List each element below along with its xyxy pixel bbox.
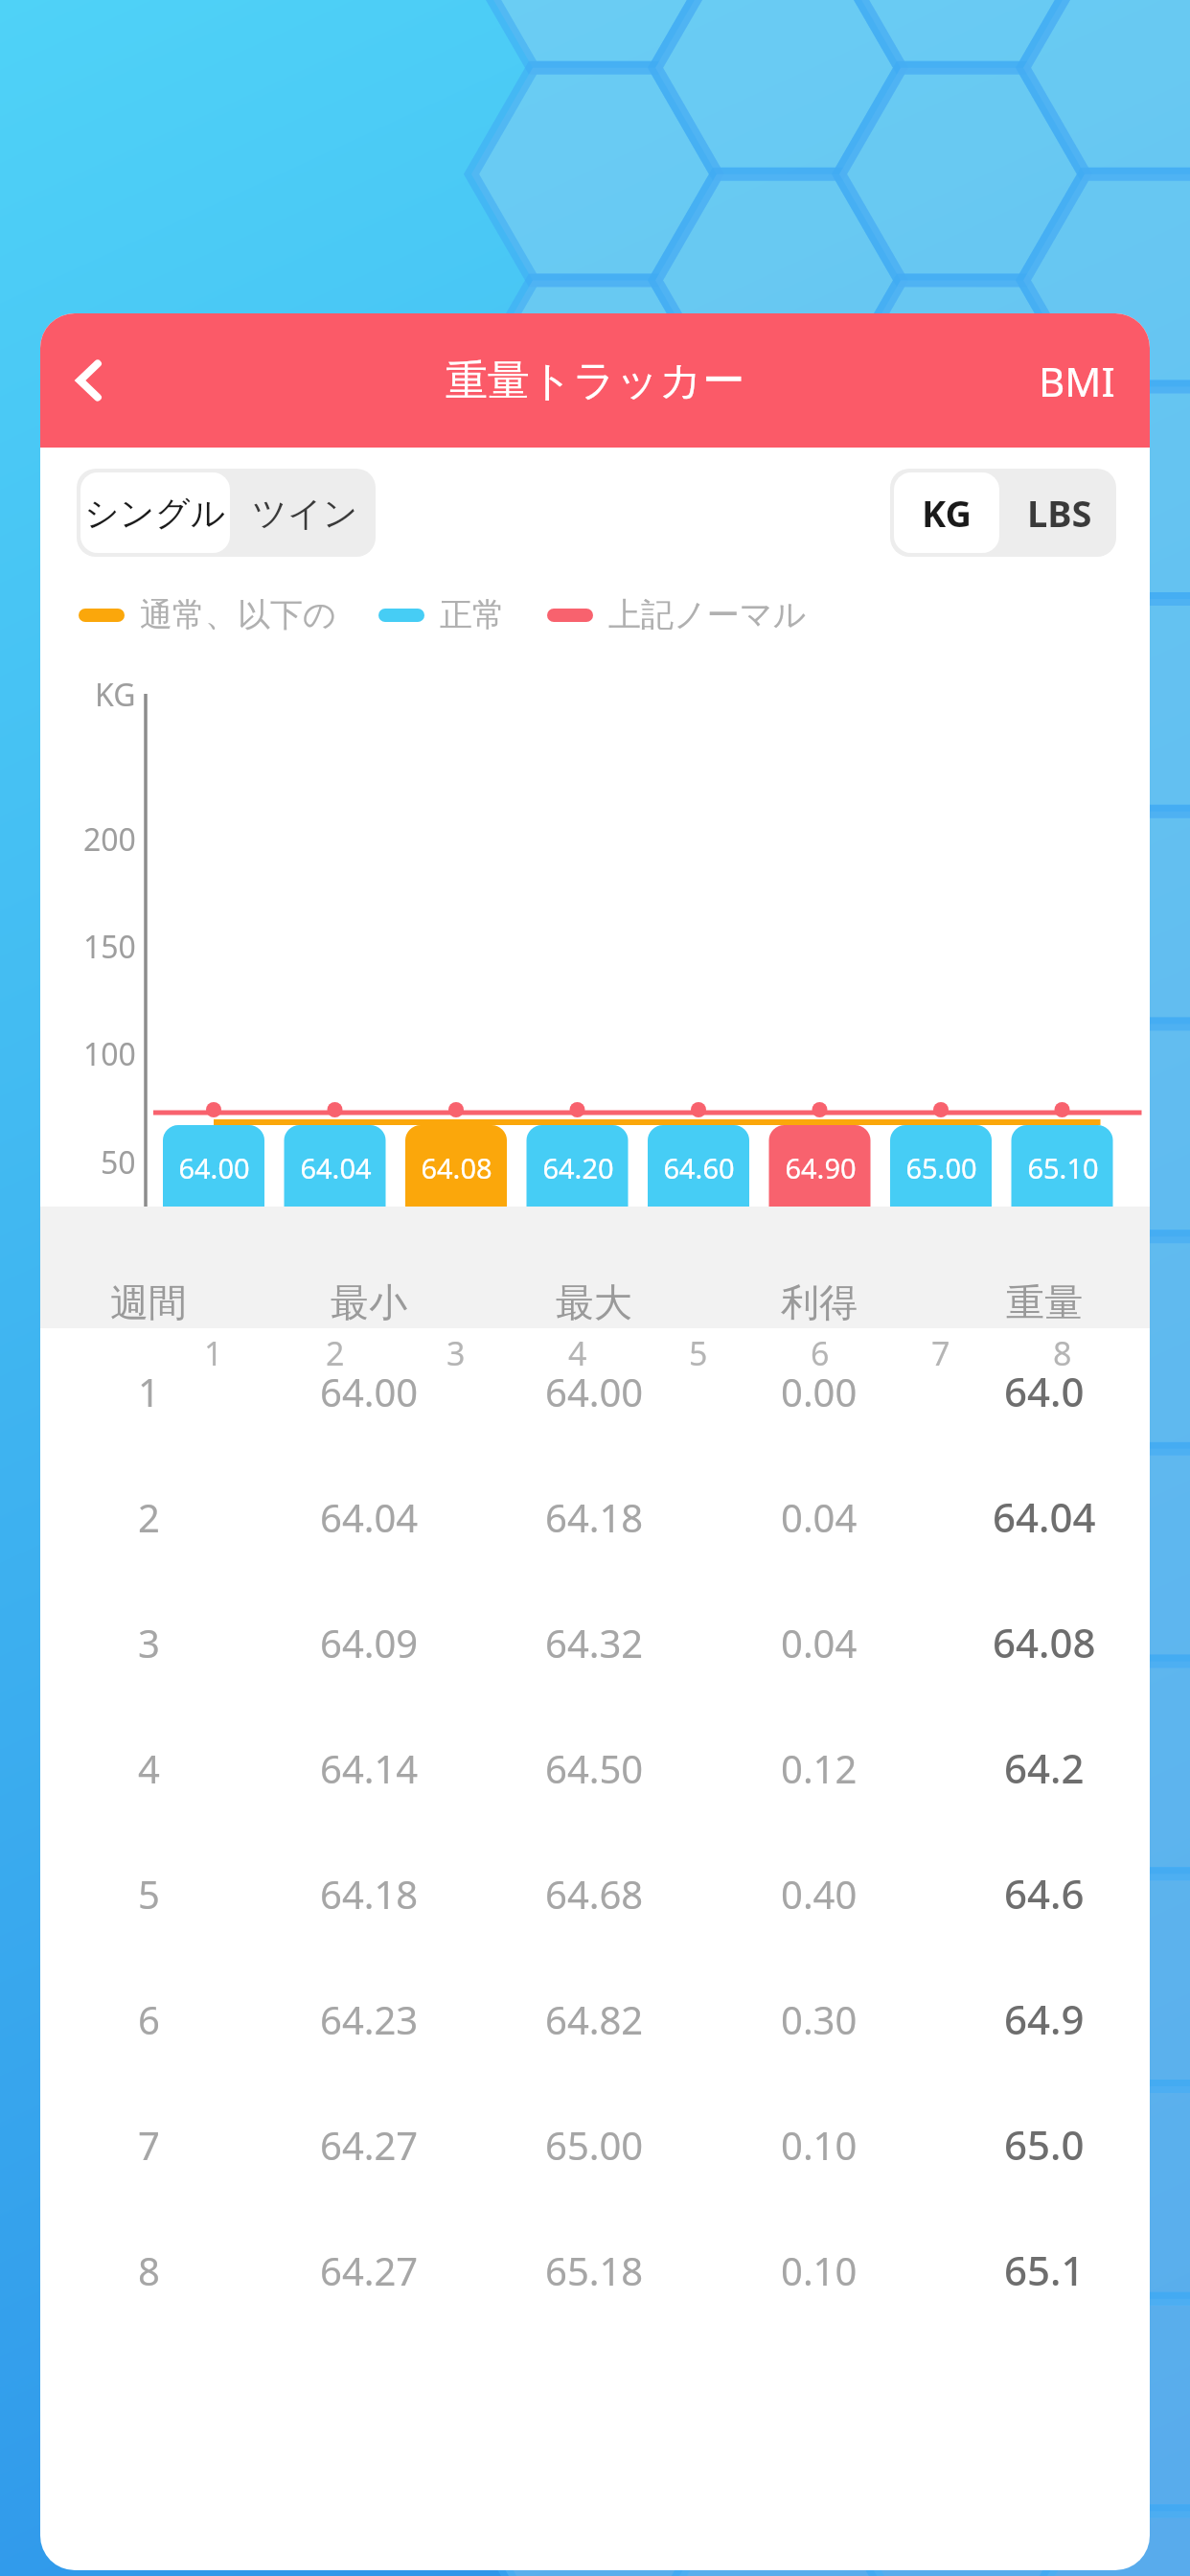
staticText: 64.60 — [663, 1149, 735, 1186]
staticText: 5 — [689, 1331, 708, 1375]
staticText: BMI — [1039, 354, 1115, 408]
button[interactable]: 8 — [40, 2207, 1150, 2333]
staticText: KG — [95, 674, 136, 716]
staticText: 64.09 — [320, 1617, 419, 1668]
staticText: 64.08 — [421, 1149, 492, 1186]
staticText: 重量 — [1006, 1278, 1083, 1326]
staticText: 0.04 — [781, 1617, 858, 1668]
button[interactable]: Back — [46, 336, 134, 425]
staticText: 6 — [811, 1331, 830, 1375]
staticText: 8 — [138, 2244, 160, 2296]
staticText: 0.00 — [781, 1366, 858, 1417]
button[interactable]: 6 — [40, 1956, 1150, 2081]
staticText: 0.12 — [781, 1742, 858, 1794]
staticText: 64.04 — [300, 1149, 372, 1186]
staticText: 重量トラッカー — [446, 355, 745, 407]
staticText: 正常 — [440, 594, 505, 635]
staticText: 7 — [931, 1331, 950, 1375]
staticText: 65.00 — [545, 2119, 644, 2171]
button[interactable]: 5 — [40, 1830, 1150, 1956]
staticText: 65.10 — [1027, 1149, 1099, 1186]
staticText: 64.82 — [545, 1993, 644, 2045]
staticText: 64.14 — [320, 1742, 419, 1794]
staticText: 上記ノーマル — [608, 594, 807, 635]
button[interactable]: ツイン — [238, 472, 372, 553]
staticText: 4 — [568, 1331, 587, 1375]
staticText: 64.6 — [1004, 1866, 1085, 1920]
staticText: 64.9 — [1004, 1991, 1085, 2046]
staticText: 0.40 — [781, 1868, 858, 1920]
button[interactable]: KG — [894, 472, 999, 553]
staticText: 64.04 — [993, 1489, 1096, 1544]
staticText: 64.18 — [545, 1491, 644, 1543]
staticText: 150 — [83, 926, 136, 968]
staticText: 200 — [83, 818, 136, 861]
button[interactable]: 3 — [40, 1579, 1150, 1705]
staticText: 64.2 — [1004, 1740, 1085, 1795]
staticText: 2 — [138, 1491, 160, 1543]
staticText: 3 — [138, 1617, 160, 1668]
staticText: ツイン — [252, 492, 358, 535]
button[interactable]: BMI — [1025, 340, 1129, 422]
staticText: 64.0 — [1004, 1364, 1085, 1418]
staticText: 50 — [101, 1141, 136, 1184]
button[interactable]: LBS — [1007, 472, 1112, 553]
staticText: 3 — [446, 1331, 466, 1375]
staticText: 64.00 — [545, 1366, 644, 1417]
staticText: KG — [922, 488, 972, 538]
staticText: 65.0 — [1004, 2117, 1085, 2172]
staticText: 1 — [138, 1366, 160, 1417]
staticText: 0.04 — [781, 1491, 858, 1543]
staticText: 6 — [138, 1993, 160, 2045]
staticText: 64.32 — [545, 1617, 644, 1668]
staticText: 65.18 — [545, 2244, 644, 2296]
staticText: 2 — [326, 1331, 345, 1375]
staticText: 7 — [138, 2119, 160, 2171]
staticText: 100 — [83, 1033, 136, 1075]
staticText: 64.08 — [993, 1615, 1096, 1669]
staticText: 0 — [118, 1250, 136, 1292]
staticText: 64.04 — [320, 1491, 419, 1543]
staticText: シングル — [84, 492, 226, 535]
staticText: 1 — [204, 1331, 223, 1375]
staticText: 8 — [1053, 1331, 1072, 1375]
staticText: 64.18 — [320, 1868, 419, 1920]
staticText: LBS — [1027, 488, 1092, 538]
staticText: 0.30 — [781, 1993, 858, 2045]
staticText: 最大 — [556, 1278, 632, 1326]
staticText: 通常、以下の — [140, 594, 336, 635]
staticText: 4 — [138, 1742, 160, 1794]
staticText: 最小 — [331, 1278, 407, 1326]
button[interactable]: 7 — [40, 2081, 1150, 2207]
staticText: 64.00 — [320, 1366, 419, 1417]
staticText: 64.27 — [320, 2119, 419, 2171]
staticText: 64.27 — [320, 2244, 419, 2296]
button[interactable]: 2 — [40, 1454, 1150, 1579]
staticText: 64.23 — [320, 1993, 419, 2045]
staticText: 65.1 — [1004, 2242, 1085, 2297]
staticText: 0.10 — [781, 2119, 858, 2171]
button[interactable]: 1 — [40, 1328, 1150, 1454]
button[interactable]: シングル — [80, 472, 230, 553]
staticText: 利得 — [781, 1278, 858, 1326]
staticText: 64.50 — [545, 1742, 644, 1794]
staticText: 64.20 — [542, 1149, 614, 1186]
button[interactable]: 4 — [40, 1705, 1150, 1830]
staticText: 0.10 — [781, 2244, 858, 2296]
staticText: 64.00 — [178, 1149, 250, 1186]
staticText: 週間 — [110, 1278, 187, 1326]
staticText: 64.90 — [785, 1149, 857, 1186]
staticText: 5 — [138, 1868, 160, 1920]
staticText: 64.68 — [545, 1868, 644, 1920]
staticText: 65.00 — [905, 1149, 977, 1186]
